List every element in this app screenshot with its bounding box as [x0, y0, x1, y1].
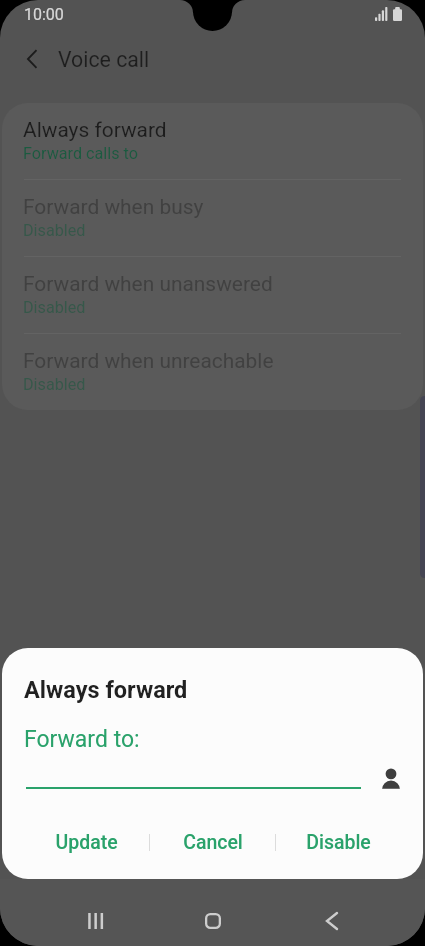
staticText: Disabled [23, 298, 86, 317]
button[interactable]: Forward when busy [2, 180, 423, 256]
staticText: 10:00 [24, 5, 64, 24]
button[interactable]: Back [308, 901, 356, 941]
staticText: Forward to: [24, 726, 140, 753]
button[interactable]: Choose contact [373, 761, 409, 797]
staticText: Disable [306, 831, 371, 854]
button[interactable]: Disable [276, 822, 401, 862]
staticText: Cancel [183, 831, 243, 854]
staticText: Disabled [23, 375, 86, 394]
button[interactable]: Recent apps [71, 901, 119, 941]
staticText: Always forward [23, 118, 167, 142]
staticText: Forward when unreachable [23, 349, 274, 373]
button[interactable]: Forward when unanswered [2, 257, 423, 333]
staticText: Disabled [23, 221, 86, 240]
staticText: Update [55, 831, 118, 854]
button[interactable]: Navigate up [13, 40, 51, 78]
staticText: Forward when unanswered [23, 272, 273, 296]
button[interactable]: Forward when unreachable [2, 334, 423, 410]
staticText: Always forward [24, 676, 188, 704]
button[interactable]: Update [24, 822, 149, 862]
button[interactable]: Always forward [2, 103, 423, 179]
button[interactable]: Home [189, 901, 237, 941]
staticText: Forward when busy [23, 195, 204, 219]
staticText: Voice call [58, 47, 150, 72]
staticText: Forward calls to [23, 144, 138, 163]
button[interactable]: Cancel [150, 822, 275, 862]
